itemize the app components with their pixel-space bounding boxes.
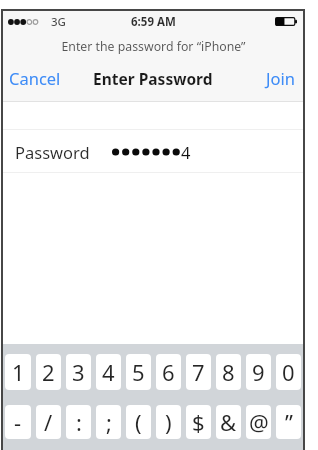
- staticText: 4: [102, 357, 115, 387]
- staticText: Cancel: [9, 67, 61, 89]
- button[interactable]: :: [66, 405, 91, 439]
- staticText: :: [76, 407, 82, 437]
- staticText: 6: [162, 357, 175, 387]
- button[interactable]: 0: [276, 354, 301, 390]
- staticText: 3: [72, 357, 85, 387]
- button[interactable]: Join: [256, 62, 303, 96]
- staticText: 4: [181, 141, 191, 163]
- staticText: @: [249, 407, 269, 437]
- staticText: 9: [252, 357, 265, 387]
- staticText: 6:59 AM: [131, 14, 176, 30]
- staticText: ;: [106, 407, 112, 437]
- staticText: Enter Password: [93, 68, 213, 89]
- button[interactable]: (: [126, 405, 151, 439]
- button[interactable]: ;: [96, 405, 121, 439]
- staticText: Enter the password for “iPhone”: [61, 38, 246, 55]
- staticText: 5: [132, 357, 145, 387]
- staticText: 2: [42, 357, 55, 387]
- button[interactable]: 1: [5, 354, 31, 390]
- button[interactable]: @: [246, 405, 271, 439]
- staticText: 8: [222, 357, 235, 387]
- staticText: $: [192, 407, 205, 437]
- staticText: 7: [192, 357, 205, 387]
- staticText: Password: [15, 141, 90, 163]
- button[interactable]: 7: [186, 354, 211, 390]
- button[interactable]: 4: [96, 354, 121, 390]
- staticText: /: [44, 407, 53, 437]
- staticText: ”: [285, 407, 293, 437]
- other: Battery: [275, 17, 297, 26]
- staticText: (: [135, 407, 142, 437]
- button[interactable]: 2: [36, 354, 61, 390]
- other: Signal strength: [8, 16, 39, 28]
- staticText: ): [165, 407, 172, 437]
- staticText: 0: [282, 357, 295, 387]
- staticText: 3G: [51, 14, 66, 30]
- button[interactable]: ”: [276, 405, 301, 439]
- staticText: Join: [266, 67, 295, 89]
- button[interactable]: 5: [126, 354, 151, 390]
- button[interactable]: Password: [3, 130, 303, 172]
- button[interactable]: 3: [66, 354, 91, 390]
- button[interactable]: ): [156, 405, 181, 439]
- button[interactable]: /: [36, 405, 61, 439]
- button[interactable]: 8: [216, 354, 241, 390]
- button[interactable]: &: [216, 405, 241, 439]
- button[interactable]: -: [5, 405, 31, 439]
- button[interactable]: Cancel: [3, 62, 71, 96]
- staticText: 1: [12, 357, 25, 387]
- button[interactable]: $: [186, 405, 211, 439]
- button[interactable]: 6: [156, 354, 181, 390]
- button[interactable]: 9: [246, 354, 271, 390]
- staticText: &: [220, 407, 237, 437]
- staticText: -: [14, 407, 22, 437]
